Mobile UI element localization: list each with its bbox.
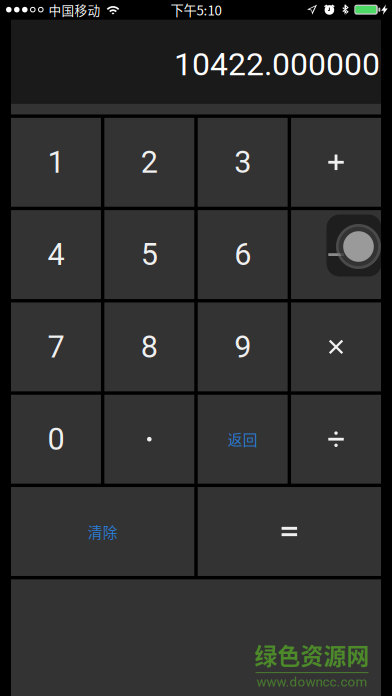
staticText: 2	[141, 144, 158, 180]
button[interactable]: 返回	[198, 395, 288, 484]
staticText: 9	[234, 329, 251, 365]
staticText: 8	[141, 329, 158, 365]
button[interactable]: 3	[198, 118, 288, 207]
button[interactable]: 4	[11, 210, 101, 299]
button[interactable]: Multiply	[291, 302, 381, 391]
button[interactable]: 8	[104, 302, 194, 391]
staticText: 中国移动	[49, 0, 101, 19]
staticText: 10422.000000	[174, 46, 380, 83]
staticText: 7	[47, 329, 64, 365]
button[interactable]: Divide	[291, 395, 381, 484]
button[interactable]: Equals	[198, 487, 381, 576]
button[interactable]: Minus	[291, 210, 381, 299]
button[interactable]: 7	[11, 302, 101, 391]
staticText: 4	[47, 237, 64, 272]
button[interactable]: 9	[198, 302, 288, 391]
staticText: 下午5:10	[170, 0, 221, 19]
staticText: 3	[234, 144, 251, 180]
button[interactable]: 清除	[11, 487, 194, 576]
button[interactable]: Decimal point	[104, 395, 194, 484]
staticText: 5	[141, 237, 158, 272]
staticText: 0	[47, 421, 64, 457]
button[interactable]: 2	[104, 118, 194, 207]
button[interactable]: 1	[11, 118, 101, 207]
button[interactable]: 0	[11, 395, 101, 484]
staticText: 清除	[88, 521, 118, 542]
staticText: 6	[234, 237, 251, 272]
button[interactable]: 6	[198, 210, 288, 299]
staticText: 返回	[228, 429, 258, 450]
staticText: www.downcc.com	[256, 674, 367, 690]
button[interactable]: 5	[104, 210, 194, 299]
staticText: 绿色资源网	[254, 638, 369, 671]
staticText: 1	[47, 144, 64, 180]
button[interactable]: Plus	[291, 118, 381, 207]
